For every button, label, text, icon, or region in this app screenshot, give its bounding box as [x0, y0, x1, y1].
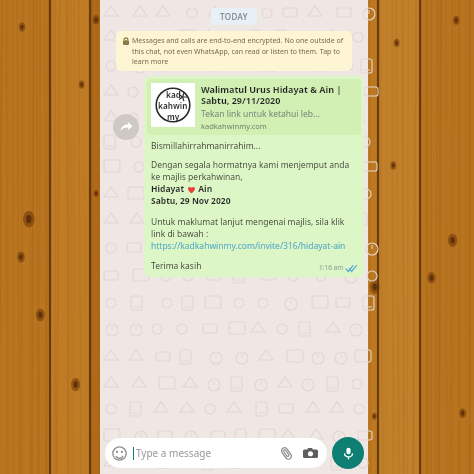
staticText: https://kadkahwinmy.com/invite/316/hiday… — [151, 240, 346, 252]
staticText: Terima kasih — [151, 260, 202, 272]
staticText: Tekan link untuk ketahui leb… — [201, 108, 320, 120]
staticText: my — [167, 111, 180, 122]
staticText: Hidayat — [151, 183, 187, 195]
button[interactable]: kad — [144, 76, 364, 277]
staticText: Untuk maklumat lanjut mengenai majlis, s… — [151, 216, 357, 240]
button[interactable]: Camera — [303, 446, 318, 461]
staticText: Messages and calls are end-to-end encryp… — [132, 36, 345, 66]
staticText: Bismillahirrahmanirrahim... — [151, 140, 261, 152]
button[interactable]: Messages and calls are end-to-end encryp… — [116, 31, 352, 71]
staticText: kad — [166, 89, 181, 100]
staticText: Dengan segala hormatnya kami menjemput a… — [151, 159, 357, 183]
button[interactable]: Attach — [279, 446, 294, 461]
staticText: kadkahwinmy.com — [201, 121, 267, 131]
button[interactable]: Record voice message — [332, 437, 364, 469]
staticText: Walimatul Urus Hidayat & Ain | Sabtu, 29… — [201, 83, 357, 107]
staticText: 1:16 am — [319, 263, 344, 272]
staticText: Sabtu, 29 Nov 2020 — [151, 195, 231, 207]
staticText: Type a message — [136, 446, 212, 460]
button[interactable]: Emoji — [105, 438, 327, 468]
button[interactable]: kad — [147, 79, 361, 135]
button[interactable]: Emoji — [112, 446, 127, 461]
staticText: Ain — [196, 183, 213, 195]
staticText: kahwin — [158, 100, 188, 111]
button[interactable]: Forward — [113, 114, 139, 140]
staticText: TODAY — [220, 11, 248, 22]
